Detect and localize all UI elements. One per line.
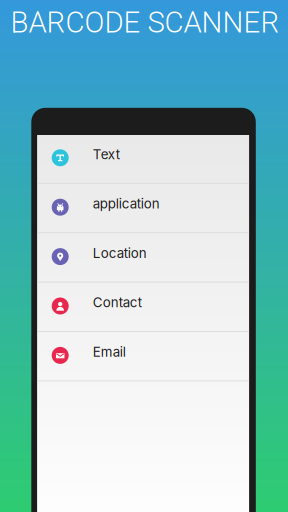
staticText: Email [93,344,126,360]
staticText: Location [93,245,147,261]
button[interactable]: Contact [37,283,249,332]
button[interactable]: application [37,184,249,233]
staticText: application [93,196,160,212]
button[interactable]: Email [37,332,249,381]
staticText: Contact [93,294,142,310]
button[interactable]: Location [37,233,249,283]
staticText: Text [93,146,120,162]
button[interactable]: Text [37,134,249,184]
staticText: BARCODE SCANNER [10,5,279,40]
